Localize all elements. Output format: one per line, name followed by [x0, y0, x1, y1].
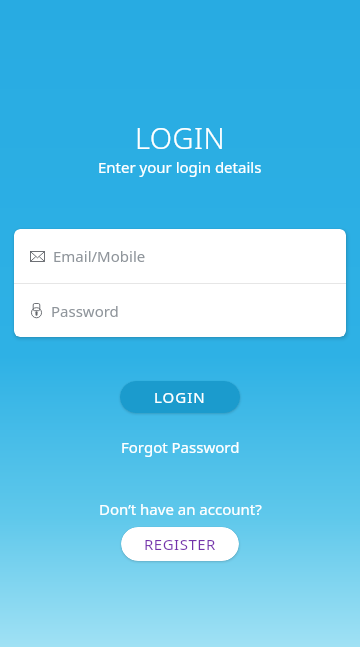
staticText: Enter your login details [98, 157, 262, 177]
button[interactable]: LOGIN [120, 381, 240, 413]
staticText: Password [51, 301, 119, 321]
staticText: REGISTER [144, 534, 216, 554]
staticText: LOGIN [135, 118, 226, 157]
button[interactable]: Password [14, 284, 346, 337]
staticText: Email/Mobile [53, 246, 146, 266]
staticText: LOGIN [154, 387, 206, 407]
button[interactable]: Forgot Password [121, 437, 240, 457]
button[interactable]: Email/Mobile [14, 229, 346, 283]
button[interactable]: REGISTER [121, 527, 239, 561]
staticText: Don’t have an account? [99, 499, 262, 519]
